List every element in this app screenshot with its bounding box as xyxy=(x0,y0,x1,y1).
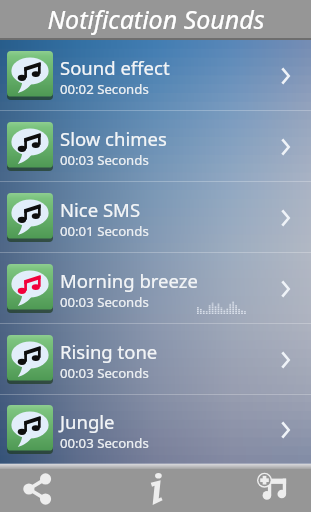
staticText: Sound effect xyxy=(60,55,170,80)
staticText: Nice SMS xyxy=(60,197,141,222)
staticText: Notification Sounds xyxy=(47,2,265,36)
button[interactable]: Slow chimes xyxy=(0,111,311,182)
staticText: 00:03 Seconds xyxy=(60,364,149,382)
staticText: 00:03 Seconds xyxy=(60,434,149,452)
button[interactable]: Morning breeze xyxy=(0,253,311,324)
staticText: Jungle xyxy=(60,409,115,434)
button[interactable]: Information xyxy=(118,469,194,512)
button[interactable]: Sound effect xyxy=(0,40,311,111)
button[interactable]: Share xyxy=(0,469,76,512)
button[interactable]: Add sound xyxy=(235,469,311,512)
staticText: 00:01 Seconds xyxy=(60,222,149,240)
staticText: 00:02 Seconds xyxy=(60,80,149,98)
staticText: 00:03 Seconds xyxy=(60,293,149,311)
button[interactable]: Jungle xyxy=(0,395,311,464)
button[interactable]: Rising tone xyxy=(0,324,311,395)
staticText: Slow chimes xyxy=(60,126,167,151)
button[interactable]: Nice SMS xyxy=(0,182,311,253)
staticText: Morning breeze xyxy=(60,268,198,293)
staticText: 00:03 Seconds xyxy=(60,151,149,169)
staticText: Rising tone xyxy=(60,339,158,364)
